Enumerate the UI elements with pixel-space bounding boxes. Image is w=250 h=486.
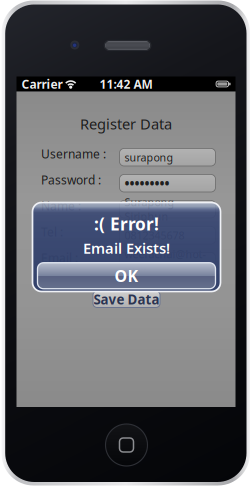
staticText: Carrier <box>21 76 62 92</box>
staticText: Surapong Siriphun <box>124 195 174 223</box>
staticText: Email Exists! <box>83 238 170 258</box>
button[interactable]: Save Data <box>93 291 160 307</box>
staticText: ••••••••• <box>124 174 169 192</box>
staticText: Password : <box>41 172 101 188</box>
button[interactable]: OK <box>37 263 215 289</box>
staticText: Register Data <box>80 114 172 133</box>
staticText: :( Error! <box>94 212 159 235</box>
staticText: 11:42 AM <box>99 76 152 92</box>
staticText: Save Data <box>93 290 159 308</box>
staticText: OK <box>114 265 138 286</box>
staticText: Username : <box>41 146 106 162</box>
staticText: weerachai@hotmail.... <box>124 247 205 275</box>
staticText: surapong <box>124 150 173 164</box>
staticText: Email : <box>41 250 78 266</box>
staticText: Name : <box>41 198 81 214</box>
staticText: 0812345678 <box>124 228 184 242</box>
